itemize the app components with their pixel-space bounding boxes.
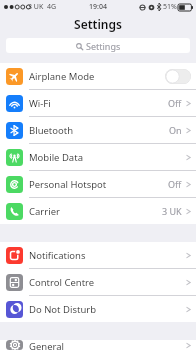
- staticText: Off: [168, 178, 182, 190]
- button[interactable]: Carrier: [0, 198, 196, 224]
- staticText: Do Not Disturb: [29, 303, 186, 316]
- staticText: 3 UK: [162, 205, 182, 217]
- staticText: 3 UK: [28, 2, 44, 12]
- button[interactable]: General: [0, 340, 196, 350]
- button[interactable]: Personal Hotspot: [0, 171, 196, 197]
- button[interactable]: Bluetooth: [0, 117, 196, 143]
- staticText: Control Centre: [29, 276, 186, 289]
- button[interactable]: Wi-Fi: [0, 90, 196, 116]
- staticText: Off: [168, 97, 182, 109]
- button[interactable]: Do Not Disturb: [0, 296, 196, 322]
- staticText: 51%: [163, 2, 177, 12]
- staticText: Wi-Fi: [29, 97, 168, 110]
- staticText: Settings: [74, 16, 122, 32]
- button[interactable]: Airplane Mode toggle: [165, 69, 191, 84]
- staticText: Bluetooth: [29, 124, 169, 137]
- staticText: 19:04: [89, 2, 107, 12]
- staticText: Personal Hotspot: [29, 178, 168, 191]
- button[interactable]: Notifications: [0, 242, 196, 268]
- staticText: General: [29, 340, 186, 350]
- staticText: Carrier: [29, 205, 162, 218]
- staticText: 4G: [47, 2, 57, 12]
- staticText: Mobile Data: [29, 151, 186, 164]
- button[interactable]: Airplane Mode: [0, 63, 196, 89]
- staticText: Settings: [86, 40, 121, 52]
- staticText: Notifications: [29, 249, 186, 262]
- button[interactable]: Search Settings: [6, 38, 190, 53]
- button[interactable]: Mobile Data: [0, 144, 196, 170]
- staticText: Airplane Mode: [29, 70, 165, 83]
- staticText: On: [169, 124, 182, 136]
- button[interactable]: Control Centre: [0, 269, 196, 295]
